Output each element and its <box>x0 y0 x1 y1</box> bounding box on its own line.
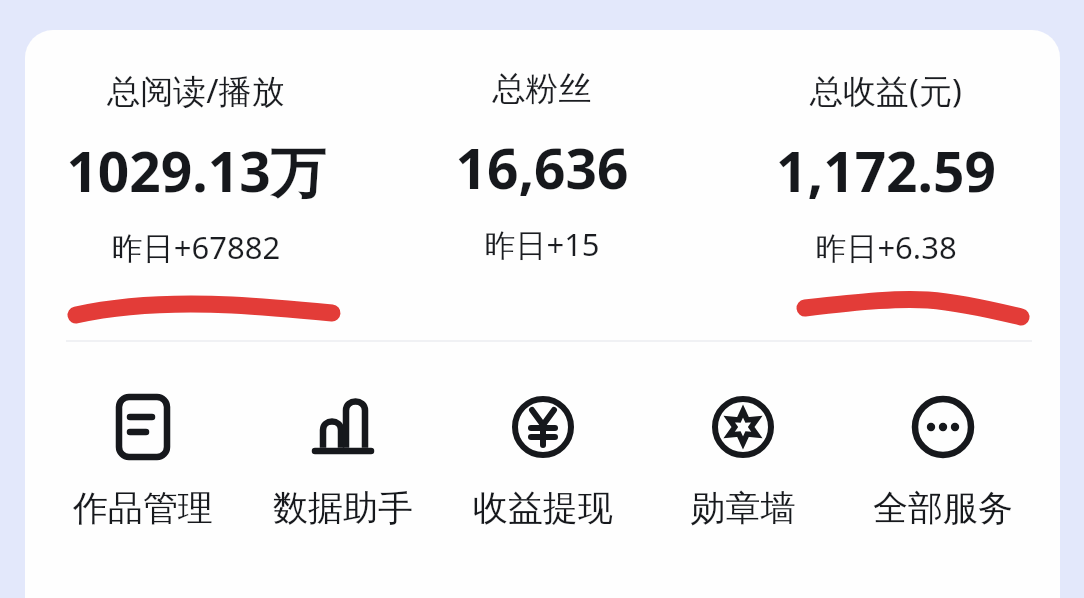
button[interactable]: 作品管理 <box>48 394 238 530</box>
staticText: 数据助手 <box>248 486 438 530</box>
staticText: 1029.13万 <box>0 133 396 208</box>
button[interactable]: 数据助手 <box>248 394 438 530</box>
button[interactable]: 全部服务 <box>848 394 1038 530</box>
staticText: 16,636 <box>342 130 742 205</box>
button[interactable]: 总收益(元) <box>686 68 1084 268</box>
button[interactable]: 总阅读/播放 <box>0 68 396 268</box>
button[interactable]: 收益提现 <box>448 394 638 530</box>
staticText: 全部服务 <box>848 486 1038 530</box>
staticText: 总粉丝 <box>342 68 742 110</box>
button[interactable]: 总粉丝 <box>342 68 742 265</box>
staticText: 昨日+67882 <box>0 226 396 268</box>
staticText: 勋章墙 <box>648 486 838 530</box>
button[interactable]: 勋章墙 <box>648 394 838 530</box>
staticText: 1,172.59 <box>686 133 1084 208</box>
staticText: 总收益(元) <box>686 68 1084 113</box>
staticText: 作品管理 <box>48 486 238 530</box>
staticText: 总阅读/播放 <box>0 68 396 113</box>
staticText: 昨日+15 <box>342 223 742 265</box>
staticText: 收益提现 <box>448 486 638 530</box>
staticText: 昨日+6.38 <box>686 226 1084 268</box>
